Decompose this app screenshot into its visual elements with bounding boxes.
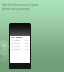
staticText: Get the best out of your plant care jour… bbox=[2, 3, 39, 10]
button[interactable] bbox=[11, 39, 29, 42]
button[interactable] bbox=[11, 45, 29, 48]
button[interactable] bbox=[11, 48, 29, 51]
button[interactable] bbox=[11, 36, 29, 39]
button[interactable] bbox=[11, 42, 29, 45]
